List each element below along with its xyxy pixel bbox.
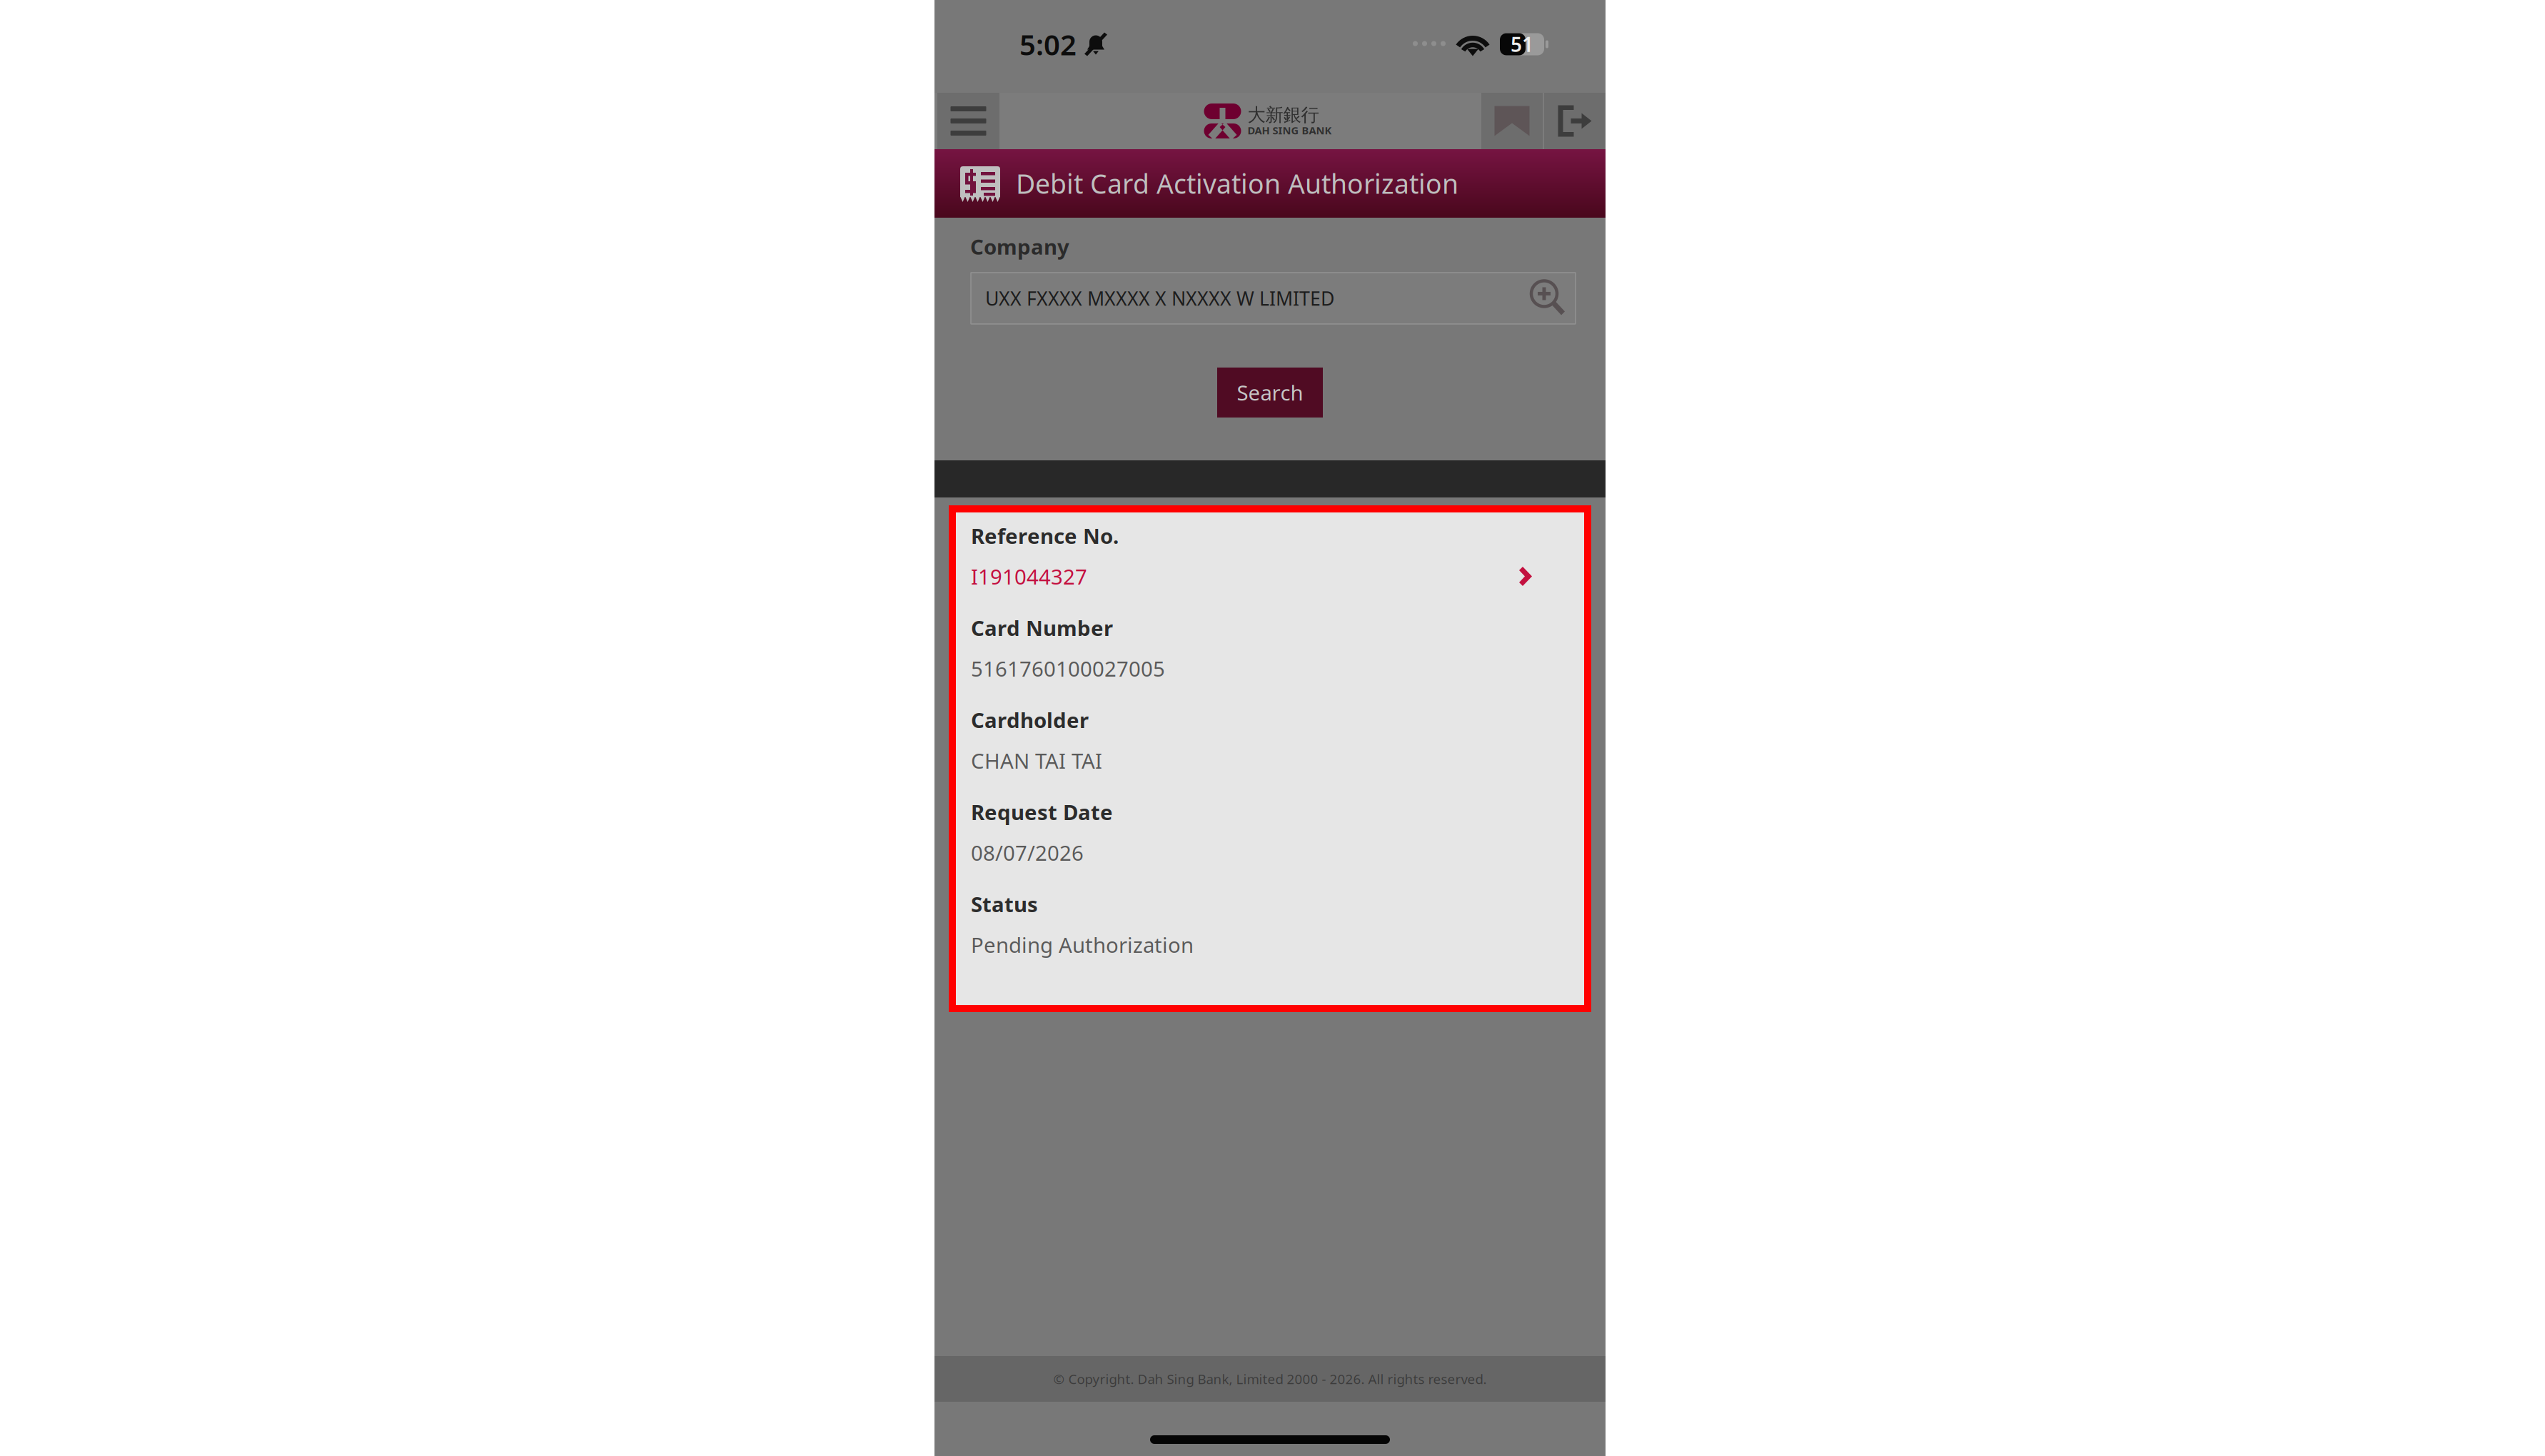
button[interactable]: I191044327	[971, 566, 1584, 587]
staticText: Debit Card Activation Authorization	[1016, 166, 1458, 201]
staticText: Status	[971, 890, 1038, 918]
staticText: 大新銀行	[1248, 104, 1319, 126]
staticText: Request Date	[971, 798, 1113, 826]
staticText: Pending Authorization	[971, 931, 1194, 959]
button[interactable]: Search	[1217, 368, 1323, 418]
staticText: DAH SING BANK	[1248, 123, 1332, 137]
staticText: 51	[1511, 31, 1533, 58]
staticText: Card Number	[971, 614, 1113, 642]
button[interactable]: Menu	[937, 93, 999, 149]
staticText: Company	[970, 233, 1069, 261]
staticText: Cardholder	[971, 706, 1089, 734]
staticText: 5161760100027005	[971, 654, 1165, 682]
staticText: Reference No.	[971, 522, 1119, 550]
staticText: 5:02	[1019, 25, 1077, 63]
staticText: 08/07/2026	[971, 839, 1084, 866]
button[interactable]: Bookmark	[1481, 93, 1543, 149]
staticText: I191044327	[971, 562, 1087, 590]
staticText: Search	[1237, 379, 1303, 406]
staticText: CHAN TAI TAI	[971, 747, 1102, 774]
button[interactable]: Log out	[1544, 93, 1606, 149]
staticText: UXX FXXXX MXXXX X NXXXX W LIMITED	[985, 286, 1334, 311]
staticText: © Copyright. Dah Sing Bank, Limited 2000…	[1053, 1370, 1487, 1388]
